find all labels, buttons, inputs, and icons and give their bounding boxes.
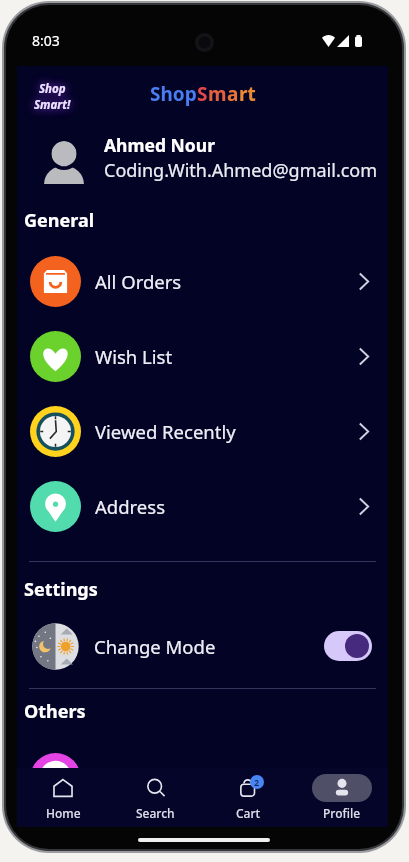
button[interactable]: Viewed Recently (17, 394, 388, 469)
button[interactable]: All Orders (17, 244, 388, 319)
staticText: a (227, 81, 239, 107)
button[interactable]: Change Mode (17, 616, 388, 676)
button[interactable]: 2 (202, 770, 295, 826)
staticText: Shop (150, 81, 197, 107)
staticText: Profile (323, 805, 361, 821)
staticText: Settings (24, 577, 98, 602)
staticText: Smart! (34, 97, 71, 113)
button[interactable]: Profile (295, 770, 388, 826)
button[interactable]: Search (109, 770, 202, 826)
staticText: Coding.With.Ahmed@gmail.com (104, 158, 378, 183)
staticText: S (197, 81, 208, 107)
button[interactable]: Address (17, 469, 388, 544)
staticText: Others (24, 699, 86, 724)
staticText: 2 (254, 776, 260, 788)
staticText: Wish List (95, 344, 173, 369)
staticText: m (208, 81, 227, 107)
button[interactable]: Wish List (17, 319, 388, 394)
staticText: rt (239, 81, 256, 107)
staticText: Address (95, 494, 166, 519)
staticText: Change Mode (94, 634, 216, 659)
staticText: All Orders (95, 269, 182, 294)
staticText: Viewed Recently (95, 419, 236, 444)
staticText: Search (136, 805, 175, 821)
staticText: Home (46, 805, 81, 821)
staticText: Ahmed Nour (104, 133, 215, 157)
staticText: 8:03 (32, 31, 60, 50)
staticText: Cart (236, 805, 261, 821)
staticText: General (24, 208, 95, 233)
staticText: Shop (39, 81, 66, 97)
button[interactable]: Home (17, 770, 109, 826)
